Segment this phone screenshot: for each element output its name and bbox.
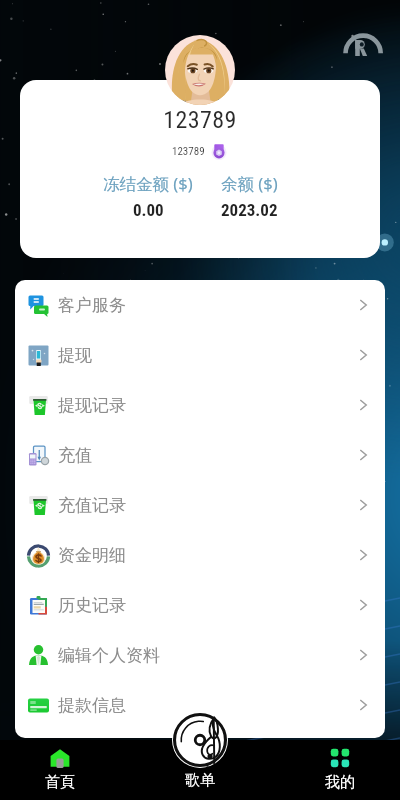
button[interactable]: 歌单 [172,712,228,768]
button[interactable]: 提现 [15,330,385,380]
staticText: 0.00 [133,200,164,220]
staticText: 提现记录 [58,395,126,416]
staticText: 充值 [58,445,92,466]
staticText: 充值记录 [58,495,126,516]
button[interactable]: Logo [342,30,382,70]
button[interactable]: Avatar [165,35,235,105]
staticText: 我的 [325,773,355,792]
staticText: 提现 [58,345,92,366]
button[interactable]: 编辑个人资料 [15,630,385,680]
staticText: 歌单 [172,771,228,790]
button[interactable]: 充值 [15,430,385,480]
button[interactable]: 客户服务 [15,280,385,330]
staticText: 编辑个人资料 [58,645,160,666]
button[interactable]: 历史记录 [15,580,385,630]
button[interactable]: 提现记录 [15,380,385,430]
staticText: 提款信息 [58,695,126,716]
staticText: 冻结金额 ($) [103,172,193,195]
staticText: 123789 [172,145,205,158]
staticText: 123789 [20,106,380,134]
button[interactable]: 提款信息 [15,680,385,730]
staticText: 历史记录 [58,595,126,616]
button[interactable]: 充值记录 [15,480,385,530]
staticText: 余额 ($) [221,172,278,195]
staticText: 客户服务 [58,295,126,316]
staticText: 资金明细 [58,545,126,566]
staticText: 2023.02 [221,200,278,220]
staticText: 首頁 [45,773,75,792]
button[interactable]: 首頁 [33,748,87,792]
button[interactable]: 我的 [313,748,367,792]
button[interactable]: 资金明细 [15,530,385,580]
